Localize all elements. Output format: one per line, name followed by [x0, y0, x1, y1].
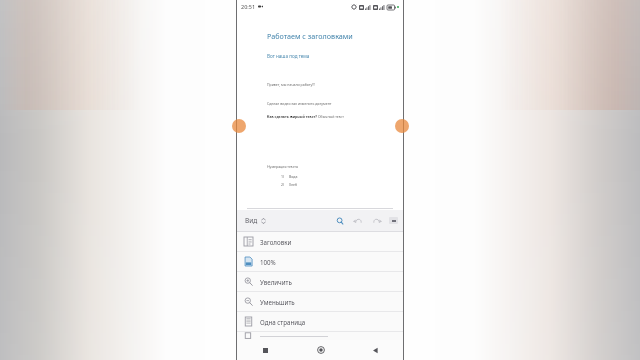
staticText: 100%	[260, 258, 276, 266]
staticText: 20:51	[241, 3, 256, 10]
button[interactable]	[237, 332, 403, 340]
staticText: Нумерация текста	[267, 164, 298, 169]
staticText: Сделал видео как изменить документ	[267, 101, 332, 106]
staticText: Уменьшить	[260, 298, 295, 306]
staticText: Вид	[245, 216, 258, 225]
button[interactable]: 100%	[237, 252, 403, 271]
button[interactable]: Search	[331, 210, 349, 231]
button[interactable]: Увеличить	[237, 272, 403, 291]
staticText: Обычный текст	[317, 114, 344, 119]
staticText: Привет, мы начали работу!!!	[267, 82, 316, 87]
button[interactable]: Уменьшить	[237, 292, 403, 311]
button[interactable]: Home	[293, 340, 348, 360]
button[interactable]: More options	[385, 210, 401, 231]
staticText: Вода	[289, 174, 298, 179]
staticText: Хлеб	[289, 182, 298, 187]
button[interactable]: Redo	[367, 210, 385, 231]
staticText: Работаем с заголовками	[267, 31, 353, 41]
button[interactable]: Recent apps	[237, 340, 293, 360]
button[interactable]: Одна страница	[237, 312, 403, 331]
staticText: Увеличить	[260, 278, 292, 286]
button[interactable]: Undo	[349, 210, 367, 231]
button[interactable]: Вид	[237, 212, 274, 229]
staticText: 2)	[281, 182, 285, 187]
staticText: Заголовки	[260, 238, 292, 246]
staticText: Как сделать жирный текст?	[267, 114, 317, 119]
button[interactable]: Back	[348, 340, 403, 360]
staticText: Вот наша под тема	[267, 53, 310, 59]
staticText: Одна страница	[260, 318, 306, 326]
button[interactable]: Заголовки	[237, 232, 403, 251]
staticText: 1)	[281, 174, 285, 179]
